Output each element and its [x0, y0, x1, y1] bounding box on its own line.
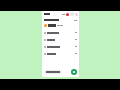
button[interactable]	[44, 70, 62, 74]
button[interactable]: Menu	[43, 12, 51, 16]
button[interactable]	[42, 37, 79, 42]
button[interactable]: Profile	[70, 12, 74, 16]
button[interactable]	[42, 30, 79, 35]
button[interactable]: Add	[71, 69, 77, 75]
button[interactable]	[42, 51, 79, 56]
button[interactable]: Notifications	[66, 13, 69, 16]
button[interactable]	[42, 44, 79, 49]
button[interactable]: More	[75, 13, 78, 16]
